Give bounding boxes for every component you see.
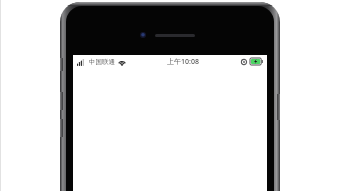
- staticText: 中国联通: [89, 58, 115, 66]
- other: Rotation lock: [241, 59, 247, 65]
- other: Cellular signal: [77, 59, 86, 66]
- other: Battery charging: [250, 58, 263, 65]
- other: Wi-Fi: [118, 59, 126, 66]
- staticText: 上午10:08: [167, 57, 199, 67]
- button[interactable]: Cellular signal: [77, 58, 126, 66]
- button[interactable]: Rotation lock: [241, 58, 263, 65]
